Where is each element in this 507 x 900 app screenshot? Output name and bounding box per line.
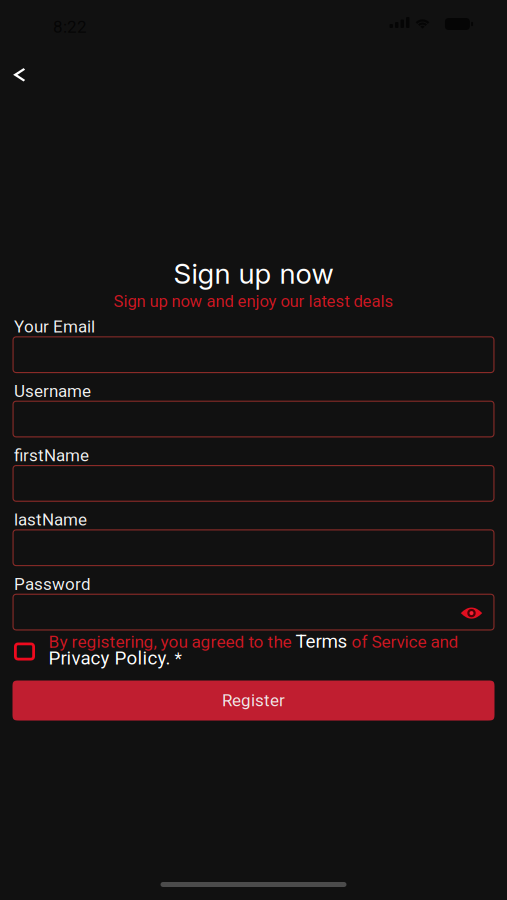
staticText: firstName — [14, 445, 89, 465]
staticText: Username — [14, 381, 91, 401]
staticText: 8:22 — [53, 17, 87, 37]
staticText: By registering, you agreed to the Terms … — [48, 630, 458, 669]
staticText: Sign up now and enjoy our latest deals — [113, 291, 393, 311]
staticText: Password — [14, 574, 91, 594]
button[interactable]: Back — [0, 48, 47, 96]
staticText: Sign up now — [173, 256, 333, 290]
staticText: lastName — [14, 510, 87, 530]
staticText: Your Email — [14, 317, 95, 337]
button[interactable]: Accept terms and conditions — [14, 642, 35, 660]
button[interactable]: Register — [12, 680, 494, 720]
button[interactable]: Show password — [450, 594, 494, 630]
staticText: Register — [222, 690, 285, 710]
